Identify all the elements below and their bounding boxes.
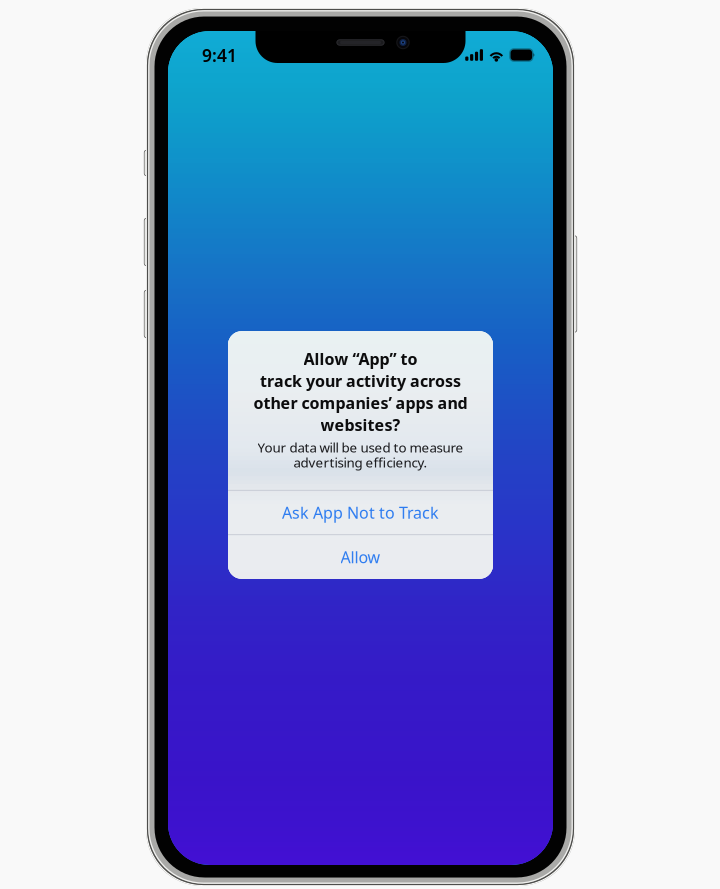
staticText: websites? <box>320 414 400 435</box>
staticText: Ask App Not to Track <box>282 502 439 523</box>
staticText: 9:41 <box>202 44 237 67</box>
staticText: Allow “App” to <box>303 348 417 369</box>
staticText: Allow <box>340 546 380 568</box>
button[interactable]: Allow <box>228 535 493 579</box>
staticText: other companies’ apps and <box>253 392 467 413</box>
button[interactable]: Ask App Not to Track <box>228 491 493 534</box>
staticText: track your activity across <box>260 370 461 391</box>
staticText: Your data will be used to measure <box>257 438 463 456</box>
staticText: advertising efficiency. <box>293 453 427 471</box>
